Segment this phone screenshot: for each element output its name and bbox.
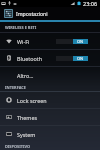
button[interactable]: System <box>0 126 100 142</box>
staticText: Bluetooth <box>17 55 43 62</box>
staticText: WIRELESS E RETI <box>5 25 37 30</box>
button[interactable]: Bluetooth <box>0 50 100 66</box>
button[interactable]: Wi-Fi <box>0 33 100 49</box>
staticText: ON <box>77 39 84 44</box>
staticText: Lock screen <box>17 97 47 104</box>
staticText: ON <box>77 56 84 61</box>
staticText: Impostazioni <box>16 10 48 17</box>
staticText: 23:06 <box>83 0 98 7</box>
staticText: DISPOSITIVO <box>5 144 30 149</box>
button[interactable]: Lock screen <box>0 92 100 108</box>
button[interactable]: Altro... <box>0 67 100 83</box>
button[interactable]: Settings app icon <box>0 7 100 20</box>
staticText: Wi-Fi <box>17 38 30 45</box>
staticText: INTERFACE <box>5 85 27 90</box>
button[interactable]: Themes <box>0 109 100 125</box>
staticText: Altro... <box>17 72 34 79</box>
other: Settings app icon <box>4 9 13 18</box>
staticText: System <box>17 131 36 138</box>
staticText: Themes <box>17 114 38 121</box>
